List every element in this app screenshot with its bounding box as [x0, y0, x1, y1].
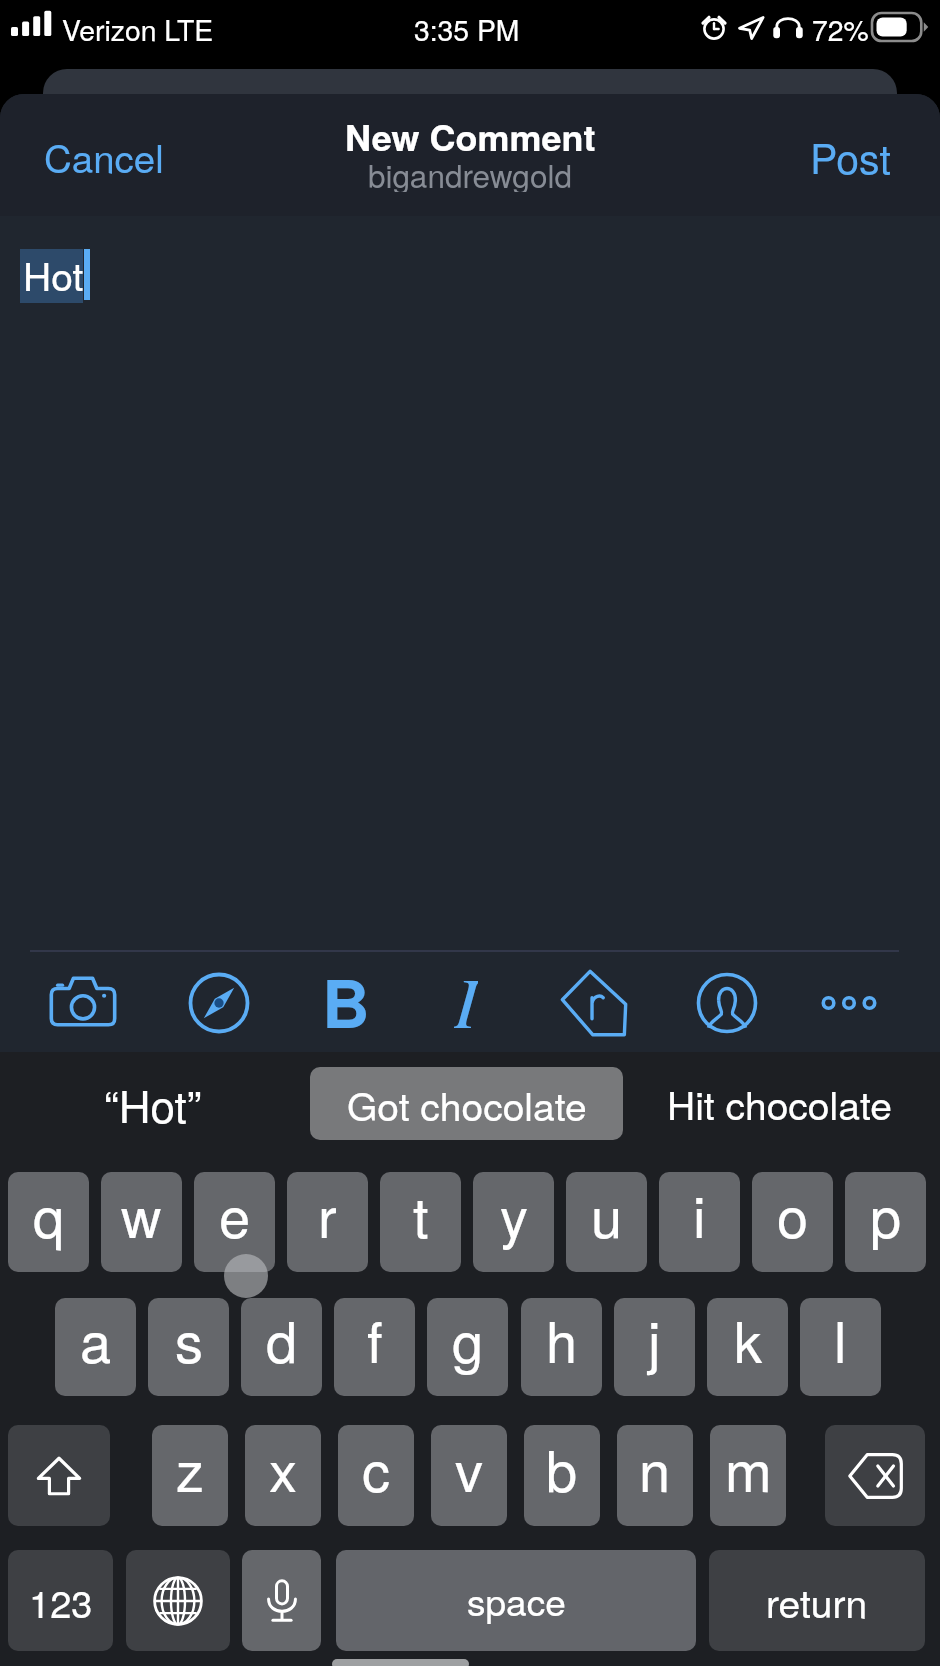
button[interactable]: f	[334, 1298, 415, 1396]
staticText: h	[546, 1299, 578, 1379]
staticText: u	[591, 1174, 623, 1254]
staticText: space	[467, 1574, 566, 1627]
button[interactable]: b	[524, 1425, 600, 1526]
staticText: B	[322, 954, 370, 1038]
staticText: a	[80, 1299, 112, 1379]
staticText: New Comment	[345, 110, 596, 154]
staticText: bigandrewgold	[368, 152, 572, 192]
staticText: 72%	[812, 9, 869, 50]
button[interactable]: w	[101, 1172, 182, 1272]
button[interactable]: “Hot”	[28, 1065, 278, 1141]
staticText: Cancel	[44, 129, 164, 184]
staticText: d	[266, 1299, 298, 1379]
button[interactable]: More options	[805, 959, 893, 1047]
button[interactable]: Insert link	[175, 959, 263, 1047]
staticText: v	[455, 1428, 483, 1508]
button[interactable]: s	[148, 1298, 229, 1396]
button[interactable]: p	[845, 1172, 926, 1272]
staticText: r	[318, 1174, 337, 1254]
staticText: g	[452, 1299, 484, 1379]
button[interactable]: Add tag	[550, 959, 638, 1047]
button[interactable]: a	[55, 1298, 136, 1396]
button[interactable]: Comment text field	[0, 216, 940, 946]
button[interactable]: Next keyboard	[126, 1550, 230, 1651]
button[interactable]: h	[521, 1298, 602, 1396]
staticText: k	[734, 1299, 762, 1379]
button[interactable]: k	[707, 1298, 788, 1396]
button[interactable]: Mention user	[683, 959, 771, 1047]
button[interactable]: Backspace	[825, 1425, 925, 1526]
button[interactable]: t	[380, 1172, 461, 1272]
staticText: c	[362, 1428, 390, 1508]
button[interactable]: z	[152, 1425, 228, 1526]
staticText: b	[546, 1428, 578, 1508]
staticText: Hit chocolate	[667, 1075, 892, 1131]
button[interactable]: e	[194, 1172, 275, 1272]
button[interactable]: Cancel	[24, 114, 184, 198]
staticText: f	[367, 1299, 383, 1379]
button[interactable]: i	[659, 1172, 740, 1272]
staticText: p	[870, 1174, 902, 1254]
staticText: Verizon LTE	[62, 9, 214, 50]
staticText: 3:35 PM	[414, 9, 520, 50]
staticText: Post	[810, 127, 891, 186]
staticText: j	[648, 1299, 661, 1379]
button[interactable]: l	[800, 1298, 881, 1396]
button[interactable]: space	[336, 1550, 696, 1651]
button[interactable]: g	[427, 1298, 508, 1396]
button[interactable]: v	[431, 1425, 507, 1526]
button[interactable]: 123	[8, 1550, 113, 1651]
button[interactable]: r	[287, 1172, 368, 1272]
button[interactable]: x	[245, 1425, 321, 1526]
staticText: x	[269, 1428, 297, 1508]
button[interactable]: I	[424, 951, 508, 1035]
staticText: Hot	[23, 246, 84, 300]
staticText: I	[454, 951, 478, 1035]
button[interactable]: o	[752, 1172, 833, 1272]
staticText: s	[175, 1299, 203, 1379]
button[interactable]: Add photo	[39, 959, 127, 1047]
button[interactable]: n	[617, 1425, 693, 1526]
staticText: return	[766, 1573, 868, 1629]
staticText: l	[834, 1299, 847, 1379]
button[interactable]: B	[304, 954, 388, 1038]
button[interactable]: Dictate	[242, 1550, 321, 1651]
button[interactable]: q	[8, 1172, 89, 1272]
button[interactable]: u	[566, 1172, 647, 1272]
button[interactable]: y	[473, 1172, 554, 1272]
staticText: “Hot”	[104, 1072, 202, 1135]
button[interactable]: return	[709, 1550, 925, 1651]
button[interactable]: Shift	[8, 1425, 110, 1526]
staticText: y	[500, 1174, 528, 1254]
staticText: t	[413, 1174, 429, 1254]
button[interactable]: m	[710, 1425, 786, 1526]
staticText: w	[121, 1174, 162, 1254]
staticText: z	[176, 1428, 204, 1508]
button[interactable]: c	[338, 1425, 414, 1526]
staticText: i	[693, 1174, 706, 1254]
staticText: m	[725, 1428, 772, 1508]
staticText: 123	[29, 1574, 93, 1628]
button[interactable]: Hit chocolate	[649, 1065, 909, 1141]
button[interactable]: Post	[780, 114, 920, 198]
staticText: q	[33, 1174, 65, 1254]
button[interactable]: Got chocolate	[310, 1067, 623, 1140]
staticText: e	[219, 1174, 251, 1254]
staticText: n	[639, 1428, 671, 1508]
button[interactable]: d	[241, 1298, 322, 1396]
staticText: o	[777, 1174, 809, 1254]
button[interactable]: j	[614, 1298, 695, 1396]
staticText: Got chocolate	[347, 1076, 587, 1132]
